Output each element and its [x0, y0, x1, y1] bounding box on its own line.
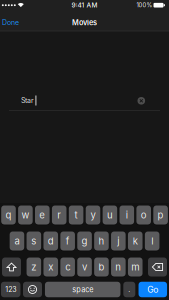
staticText: Star — [21, 96, 34, 105]
staticText: k — [133, 235, 138, 247]
button[interactable]: x — [43, 257, 58, 276]
staticText: f — [66, 235, 70, 247]
button[interactable]: l — [145, 231, 159, 250]
staticText: b — [98, 261, 104, 273]
button[interactable]: m — [128, 257, 143, 276]
button[interactable]: p — [153, 205, 168, 224]
staticText: x — [48, 261, 53, 273]
staticText: a — [14, 235, 19, 247]
staticText: c — [65, 261, 70, 273]
button[interactable]: k — [128, 231, 143, 250]
button[interactable]: d — [43, 231, 58, 250]
staticText: v — [82, 261, 87, 273]
button[interactable]: r — [52, 205, 66, 224]
staticText: n — [115, 261, 121, 273]
staticText: g — [81, 235, 87, 247]
button[interactable]: n — [111, 257, 126, 276]
button[interactable]: Go — [139, 282, 167, 297]
staticText: h — [98, 235, 104, 247]
staticText: p — [158, 209, 164, 221]
button[interactable]: q — [1, 205, 16, 224]
button[interactable]: b — [94, 257, 109, 276]
button[interactable]: c — [60, 257, 75, 276]
staticText: m — [131, 261, 139, 273]
button[interactable]: Done — [2, 18, 19, 27]
staticText: i — [126, 209, 128, 221]
staticText: Go — [147, 284, 158, 295]
staticText: z — [31, 261, 36, 273]
button[interactable]: Emoji — [23, 282, 42, 297]
staticText: space — [72, 285, 93, 294]
button[interactable]: h — [94, 231, 109, 250]
button[interactable]: f — [60, 231, 75, 250]
button[interactable]: j — [111, 231, 126, 250]
button[interactable]: z — [27, 257, 41, 276]
button[interactable]: v — [77, 257, 92, 276]
staticText: . — [128, 285, 130, 294]
staticText: e — [39, 209, 45, 221]
staticText: 100% — [136, 2, 152, 9]
staticText: q — [5, 209, 11, 221]
staticText: t — [75, 209, 78, 221]
staticText: Movies — [72, 18, 97, 27]
staticText: Done — [2, 18, 19, 27]
staticText: u — [107, 209, 113, 221]
staticText: s — [31, 235, 36, 247]
button[interactable]: 123 — [1, 282, 20, 297]
staticText: d — [48, 235, 54, 247]
button[interactable]: Clear text — [137, 96, 146, 105]
button[interactable]: o — [136, 205, 151, 224]
staticText: l — [151, 235, 153, 247]
button[interactable]: w — [18, 205, 33, 224]
staticText: r — [57, 209, 61, 221]
staticText: 123 — [5, 285, 16, 294]
button[interactable]: Shift — [2, 257, 21, 276]
button[interactable]: s — [26, 231, 41, 250]
staticText: 9:41 AM — [71, 1, 97, 9]
button[interactable]: g — [77, 231, 92, 250]
button[interactable]: . — [123, 282, 135, 297]
staticText: o — [141, 209, 147, 221]
staticText: w — [21, 209, 29, 221]
staticText: y — [90, 209, 95, 221]
button[interactable]: e — [35, 205, 50, 224]
button[interactable]: space — [45, 282, 120, 297]
button[interactable]: Delete — [148, 257, 167, 276]
staticText: j — [117, 235, 119, 247]
button[interactable]: i — [119, 205, 134, 224]
button[interactable]: y — [86, 205, 100, 224]
button[interactable]: a — [10, 231, 24, 250]
button[interactable]: t — [69, 205, 83, 224]
button[interactable]: u — [103, 205, 117, 224]
